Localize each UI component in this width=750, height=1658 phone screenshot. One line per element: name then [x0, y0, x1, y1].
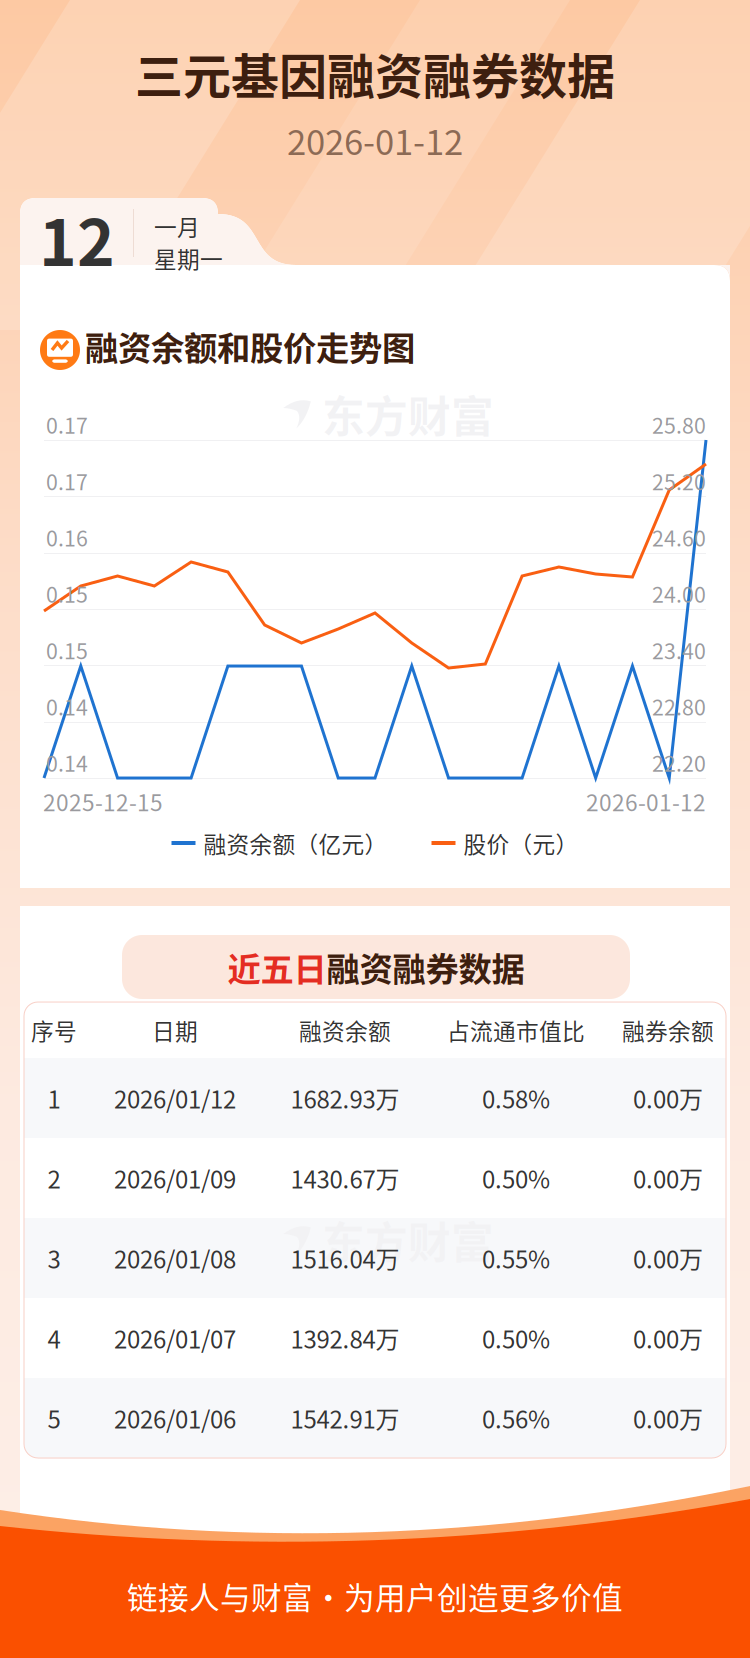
- staticText: 0.56%: [482, 1401, 550, 1435]
- staticText: 1682.93万: [290, 1081, 399, 1115]
- staticText: 融资余额: [299, 1014, 391, 1046]
- staticText: 2025-12-15: [43, 785, 163, 818]
- staticText: 1392.84万: [290, 1321, 399, 1355]
- staticText: 2026/01/09: [114, 1161, 236, 1195]
- staticText: 1542.91万: [290, 1401, 399, 1435]
- staticText: 0.55%: [482, 1241, 550, 1275]
- staticText: 2026/01/12: [114, 1081, 236, 1115]
- staticText: 融资余额（亿元）: [203, 827, 387, 859]
- staticText: 12: [39, 192, 115, 284]
- staticText: 2: [47, 1161, 60, 1195]
- staticText: 0.50%: [482, 1321, 550, 1355]
- staticText: 23.40: [652, 634, 706, 665]
- staticText: 0.17: [46, 409, 88, 440]
- staticText: 占流通市值比: [447, 1014, 585, 1046]
- staticText: 22.80: [652, 691, 706, 722]
- staticText: 星期一: [154, 242, 223, 274]
- staticText: 2026/01/06: [114, 1401, 236, 1435]
- staticText: 0.15: [46, 578, 88, 609]
- staticText: 3: [47, 1241, 60, 1275]
- staticText: 链接人与财富·为用户创造更多价值: [127, 1574, 623, 1618]
- staticText: 融券余额: [622, 1014, 714, 1046]
- staticText: 2026/01/07: [114, 1321, 236, 1355]
- staticText: 0.00万: [633, 1321, 703, 1355]
- staticText: 0.00万: [633, 1081, 703, 1115]
- staticText: 4: [47, 1321, 60, 1355]
- staticText: 0.14: [46, 691, 88, 722]
- staticText: 0.14: [46, 747, 88, 778]
- staticText: 序号: [31, 1014, 77, 1046]
- staticText: 24.60: [652, 522, 706, 553]
- staticText: 25.20: [652, 465, 706, 496]
- staticText: 融资融券数据: [326, 943, 524, 991]
- staticText: 一月: [154, 210, 200, 242]
- staticText: 22.20: [652, 747, 706, 778]
- staticText: 1430.67万: [290, 1161, 399, 1195]
- staticText: 股价（元）: [463, 827, 578, 859]
- staticText: 融资余额和股价走势图: [85, 322, 415, 370]
- staticText: 东方财富: [322, 1209, 494, 1271]
- staticText: 1: [47, 1081, 60, 1115]
- staticText: 1516.04万: [290, 1241, 399, 1275]
- staticText: 近五日: [227, 943, 326, 991]
- staticText: 东方财富: [322, 383, 494, 445]
- staticText: 0.58%: [482, 1081, 550, 1115]
- staticText: 24.00: [652, 578, 706, 609]
- staticText: 25.80: [652, 409, 706, 440]
- staticText: 0.00万: [633, 1401, 703, 1435]
- staticText: 0.16: [46, 522, 88, 553]
- staticText: 0.00万: [633, 1241, 703, 1275]
- staticText: 三元基因融资融券数据: [135, 38, 615, 108]
- staticText: 0.50%: [482, 1161, 550, 1195]
- staticText: 2026-01-12: [586, 785, 706, 818]
- staticText: 2026-01-12: [287, 115, 463, 165]
- staticText: 0.00万: [633, 1161, 703, 1195]
- staticText: 0.15: [46, 634, 88, 665]
- staticText: 2026/01/08: [114, 1241, 236, 1275]
- staticText: 5: [47, 1401, 60, 1435]
- staticText: 0.17: [46, 465, 88, 496]
- staticText: 日期: [152, 1014, 198, 1046]
